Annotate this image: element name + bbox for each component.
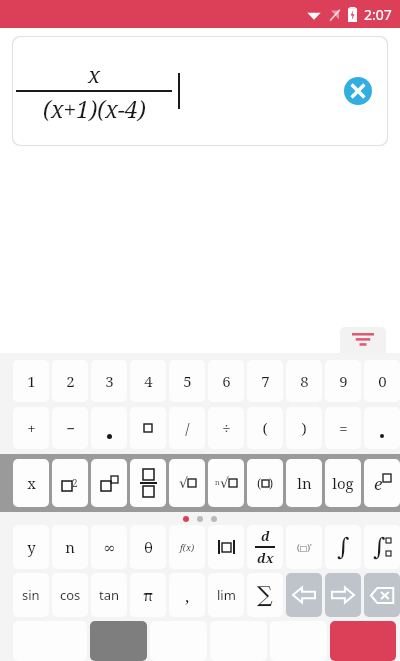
button[interactable]: Shift <box>90 621 147 661</box>
button[interactable]: 4 <box>130 360 166 402</box>
button[interactable]: Filter <box>340 327 386 353</box>
staticText: ln <box>297 473 312 493</box>
staticText: tan <box>99 586 120 604</box>
staticText: 2:07 <box>364 5 392 24</box>
button[interactable] <box>364 407 400 449</box>
staticText: lim <box>217 586 236 604</box>
staticText: f(x) <box>180 541 195 553</box>
button[interactable]: cos <box>52 573 88 617</box>
button[interactable]: − <box>52 407 88 449</box>
button[interactable]: 6 <box>208 360 244 402</box>
button[interactable]: 3 <box>91 360 127 402</box>
button[interactable]: ∫ <box>364 525 400 569</box>
button[interactable]: 8 <box>286 360 322 402</box>
staticText: n <box>215 478 220 488</box>
button[interactable]: ) <box>286 407 322 449</box>
button[interactable]: Enter <box>330 621 396 661</box>
staticText: + <box>27 418 36 438</box>
staticText: ∑ <box>257 582 273 608</box>
staticText: ) <box>269 475 274 491</box>
button[interactable]: Move left <box>286 573 322 617</box>
button[interactable]: 0 <box>364 360 400 402</box>
staticText: x <box>27 473 36 493</box>
button[interactable]: / <box>169 407 205 449</box>
staticText: d <box>261 527 270 545</box>
button[interactable]: 2 <box>52 459 88 507</box>
staticText: ∫ <box>373 533 386 561</box>
button[interactable]: e <box>364 459 400 507</box>
button[interactable]: ∞ <box>91 525 127 569</box>
button[interactable]: ∑ <box>247 573 283 617</box>
button[interactable]: y <box>13 525 49 569</box>
button[interactable]: x <box>13 459 49 507</box>
staticText: 5 <box>183 371 192 391</box>
button[interactable]: ln <box>286 459 322 507</box>
staticText: (x+1)(x−4) <box>43 93 146 124</box>
staticText: n <box>65 537 75 557</box>
button[interactable] <box>91 459 127 507</box>
staticText: θ <box>144 537 153 557</box>
staticText: x <box>88 59 101 89</box>
button[interactable]: sin <box>13 573 49 617</box>
button[interactable]: f(x) <box>169 525 205 569</box>
button[interactable]: ÷ <box>208 407 244 449</box>
staticText: dx <box>257 549 274 567</box>
button[interactable]: n <box>208 459 244 507</box>
button[interactable]: ∫ <box>325 525 361 569</box>
button[interactable]: θ <box>130 525 166 569</box>
button[interactable]: (□)' <box>286 525 322 569</box>
button[interactable]: Move right <box>325 573 361 617</box>
button[interactable] <box>130 459 166 507</box>
button[interactable]: 1 <box>13 360 49 402</box>
button[interactable]: √ <box>169 459 205 507</box>
button[interactable]: π <box>130 573 166 617</box>
staticText: √ <box>220 475 229 491</box>
staticText: y <box>27 537 36 557</box>
button[interactable]: , <box>169 573 205 617</box>
staticText: 1 <box>27 371 36 391</box>
button[interactable]: = <box>325 407 361 449</box>
button[interactable]: tan <box>91 573 127 617</box>
staticText: sin <box>22 586 40 604</box>
button[interactable]: Clear <box>342 75 374 107</box>
staticText: 2 <box>72 476 78 490</box>
staticText: / <box>185 418 190 438</box>
staticText: 8 <box>300 371 309 391</box>
button[interactable]: d <box>247 525 283 569</box>
staticText: 3 <box>105 371 114 391</box>
staticText: √ <box>179 475 188 491</box>
button[interactable] <box>130 407 166 449</box>
button[interactable]: 7 <box>247 360 283 402</box>
staticText: ( <box>262 418 268 438</box>
staticText: 2 <box>66 371 75 391</box>
staticText: 4 <box>144 371 153 391</box>
button[interactable]: 5 <box>169 360 205 402</box>
button[interactable] <box>91 407 127 449</box>
staticText: log <box>332 473 354 493</box>
staticText: ∫ <box>337 533 350 561</box>
button[interactable]: Backspace <box>364 573 400 617</box>
staticText: = <box>339 418 348 438</box>
button[interactable]: + <box>13 407 49 449</box>
staticText: ÷ <box>222 418 231 438</box>
button[interactable]: ( <box>247 407 283 449</box>
button[interactable]: ( <box>247 459 283 507</box>
button[interactable]: 9 <box>325 360 361 402</box>
staticText: 6 <box>222 371 231 391</box>
staticText: (□)' <box>297 542 312 553</box>
button[interactable]: log <box>325 459 361 507</box>
button[interactable]: lim <box>208 573 244 617</box>
staticText: , <box>185 584 190 607</box>
button[interactable]: x <box>12 36 388 146</box>
staticText: 0 <box>378 371 387 391</box>
staticText: ( <box>257 475 262 491</box>
button[interactable]: n <box>52 525 88 569</box>
staticText: − <box>66 418 75 438</box>
button[interactable]: 2 <box>52 360 88 402</box>
button[interactable] <box>208 525 244 569</box>
staticText: ∞ <box>103 539 116 556</box>
